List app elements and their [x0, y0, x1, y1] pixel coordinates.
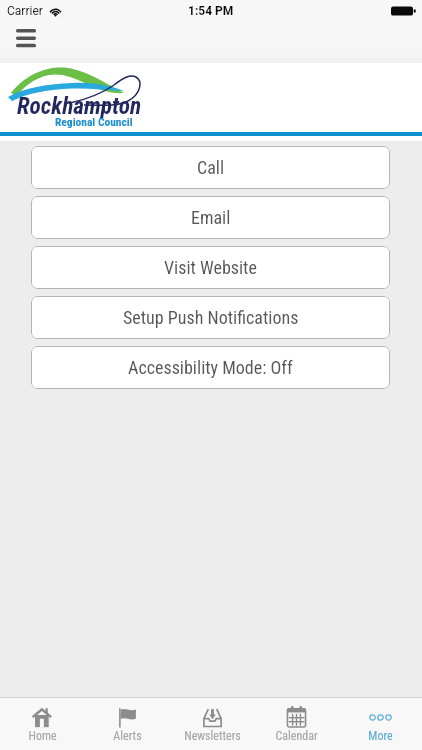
staticText: Email	[191, 207, 231, 228]
button[interactable]: Home	[0, 698, 85, 750]
button[interactable]: Calendar	[254, 698, 338, 750]
button[interactable]: Call	[31, 146, 390, 189]
staticText: Newsletters	[184, 729, 241, 743]
staticText: Regional Council	[55, 115, 133, 128]
button[interactable]: Setup Push Notifications	[31, 296, 390, 339]
button[interactable]: Email	[31, 196, 390, 239]
button[interactable]: Open navigation menu	[6, 20, 46, 57]
button[interactable]: More	[338, 698, 422, 750]
staticText: Calendar	[275, 729, 318, 743]
staticText: Rockhampton	[17, 92, 142, 119]
staticText: Accessibility Mode: Off	[128, 357, 293, 378]
staticText: Call	[197, 157, 225, 178]
staticText: Alerts	[113, 729, 142, 743]
staticText: Carrier	[7, 4, 43, 18]
staticText: More	[368, 729, 393, 743]
button[interactable]: Visit Website	[31, 246, 390, 289]
button[interactable]: Alerts	[85, 698, 170, 750]
staticText: Home	[28, 729, 57, 743]
staticText: Setup Push Notifications	[123, 307, 299, 328]
staticText: Visit Website	[164, 257, 257, 278]
staticText: 1:54 PM	[188, 4, 234, 18]
button[interactable]: Newsletters	[170, 698, 254, 750]
button[interactable]: Accessibility Mode: Off	[31, 346, 390, 389]
